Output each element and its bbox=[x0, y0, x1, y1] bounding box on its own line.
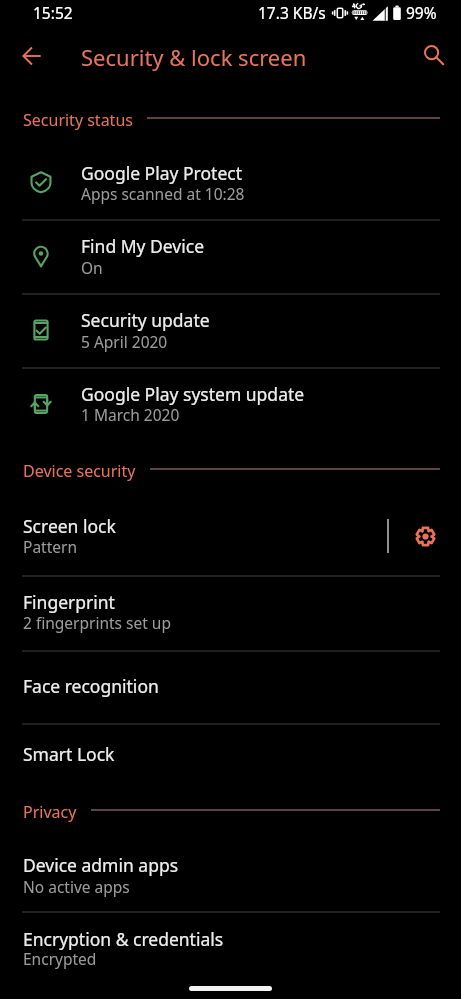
staticText: Face recognition bbox=[23, 674, 159, 698]
button[interactable]: Face recognition bbox=[0, 650, 461, 723]
staticText: Apps scanned at 10:28 bbox=[81, 183, 245, 204]
button[interactable]: Security update bbox=[0, 293, 461, 367]
staticText: Encrypted bbox=[23, 948, 97, 969]
staticText: Device admin apps bbox=[23, 853, 179, 877]
button[interactable]: Fingerprint bbox=[0, 575, 461, 650]
staticText: Device security bbox=[23, 460, 136, 482]
staticText: No active apps bbox=[23, 876, 130, 897]
staticText: 99% bbox=[406, 2, 437, 23]
button[interactable]: Find My Device bbox=[0, 219, 461, 293]
staticText: 2 fingerprints set up bbox=[23, 612, 171, 633]
button[interactable]: Screen lock bbox=[0, 498, 387, 575]
staticText: Screen lock bbox=[23, 514, 116, 538]
staticText: Security status bbox=[23, 109, 133, 131]
button[interactable]: Screen lock settings bbox=[389, 498, 461, 575]
staticText: Google Play Protect bbox=[81, 161, 242, 185]
staticText: Encryption & credentials bbox=[23, 927, 224, 951]
button[interactable]: Google Play Protect bbox=[0, 145, 461, 219]
button[interactable]: Device admin apps bbox=[0, 838, 461, 911]
staticText: Find My Device bbox=[81, 234, 205, 258]
button[interactable]: Google Play system update bbox=[0, 367, 461, 441]
staticText: 17.3 KB/s bbox=[258, 2, 326, 23]
staticText: Privacy bbox=[23, 801, 77, 823]
staticText: Pattern bbox=[23, 536, 77, 557]
staticText: Security & lock screen bbox=[81, 42, 307, 72]
staticText: Fingerprint bbox=[23, 590, 115, 614]
staticText: 1 March 2020 bbox=[81, 404, 180, 425]
staticText: Smart Lock bbox=[23, 742, 115, 766]
button[interactable]: Encryption & credentials bbox=[0, 911, 461, 984]
staticText: Security update bbox=[81, 308, 210, 332]
staticText: Google Play system update bbox=[81, 382, 305, 406]
button[interactable]: Search bbox=[412, 33, 456, 77]
button[interactable]: Smart Lock bbox=[0, 723, 461, 796]
staticText: 5 April 2020 bbox=[81, 331, 168, 352]
staticText: 15:52 bbox=[33, 2, 73, 23]
button[interactable]: Back bbox=[10, 34, 54, 78]
staticText: On bbox=[81, 257, 103, 278]
